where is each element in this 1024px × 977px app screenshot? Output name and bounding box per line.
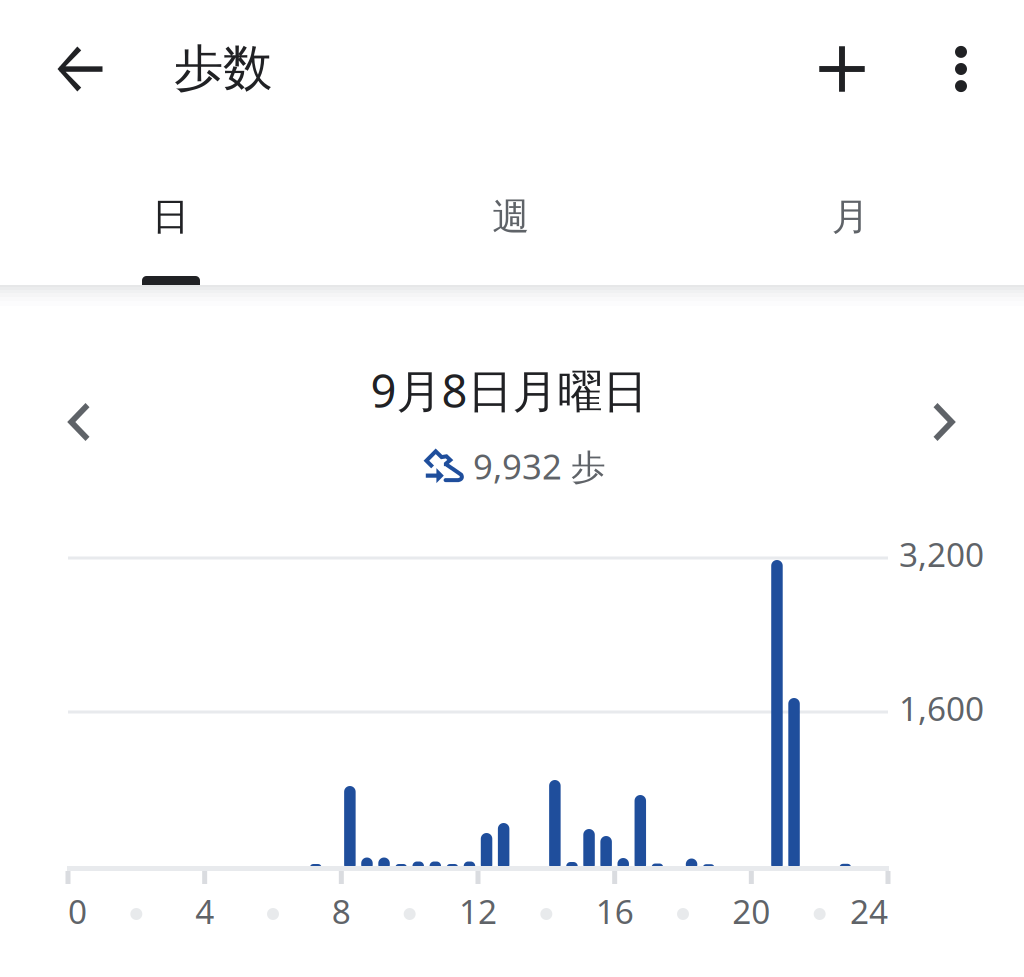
staticText: 20 (732, 889, 770, 933)
button[interactable]: Previous day (33, 377, 123, 467)
staticText: 週 (492, 194, 529, 240)
button[interactable]: 日 (0, 160, 341, 285)
staticText: 1,600 (899, 686, 984, 730)
staticText: 4 (195, 889, 214, 933)
staticText: 24 (850, 889, 888, 933)
staticText: 8 (332, 889, 351, 933)
staticText: 日 (152, 194, 189, 240)
staticText: 12 (459, 889, 497, 933)
button[interactable]: 月 (683, 160, 1024, 285)
button[interactable]: Add (797, 24, 887, 114)
button[interactable]: More options (916, 24, 1006, 114)
button[interactable]: 週 (341, 160, 683, 285)
staticText: 月 (832, 194, 869, 240)
staticText: 3,200 (899, 532, 984, 576)
button[interactable]: Back (35, 24, 125, 114)
button[interactable]: Next day (900, 377, 990, 467)
staticText: 9,932 歩 (473, 443, 606, 489)
staticText: 歩数 (174, 38, 272, 99)
staticText: 9月8日月曜日 (370, 360, 647, 420)
staticText: 0 (68, 889, 87, 933)
staticText: 16 (596, 889, 634, 933)
